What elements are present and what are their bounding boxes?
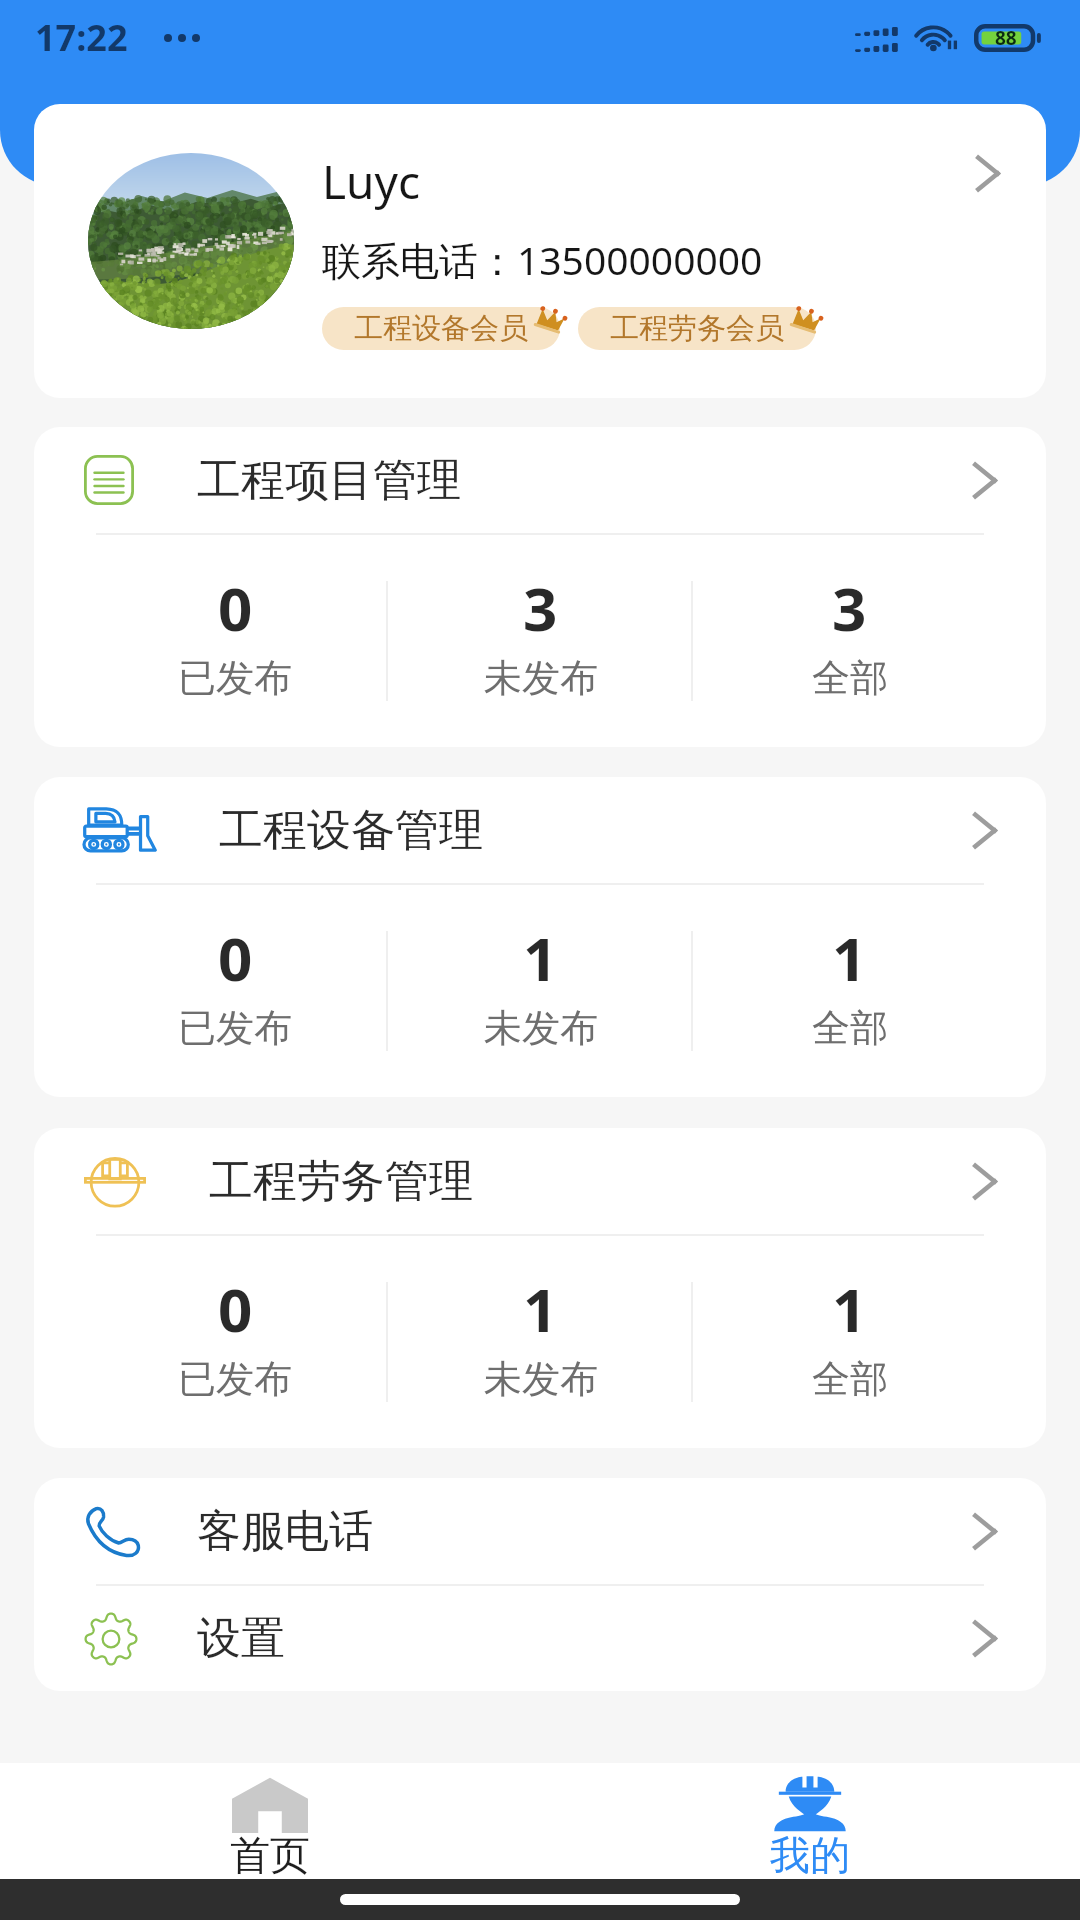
button[interactable]: 工程劳务管理 <box>34 1128 1046 1234</box>
staticText: 1 <box>523 1268 558 1350</box>
staticText: 全部 <box>812 1004 888 1052</box>
staticText: 未发布 <box>484 1355 598 1403</box>
staticText: 1 <box>523 917 558 999</box>
button[interactable]: 首页 <box>0 1763 540 1879</box>
button[interactable]: 查看个人资料 <box>960 145 1016 201</box>
staticText: 已发布 <box>178 1004 292 1052</box>
staticText: 88 <box>995 25 1017 51</box>
staticText: 工程劳务会员 <box>610 310 784 347</box>
staticText: 全部 <box>812 654 888 702</box>
button[interactable]: 3 <box>709 535 1046 747</box>
staticText: 设置 <box>197 1611 285 1666</box>
staticText: Luyc <box>322 150 421 213</box>
staticText: 1 <box>832 1268 867 1350</box>
button[interactable]: 工程设备会员 <box>322 307 560 350</box>
button[interactable]: 3 <box>372 535 709 747</box>
button[interactable]: 工程设备管理 <box>34 777 1046 883</box>
staticText: 全部 <box>812 1355 888 1403</box>
staticText: 0 <box>218 567 253 649</box>
staticText: 我的 <box>770 1830 850 1876</box>
staticText: 工程项目管理 <box>197 453 461 508</box>
button[interactable]: 1 <box>372 1236 709 1448</box>
staticText: 工程设备会员 <box>354 310 528 347</box>
staticText: 17:22 <box>35 13 128 62</box>
staticText: 未发布 <box>484 1004 598 1052</box>
staticText: 3 <box>832 567 867 649</box>
staticText: 工程劳务管理 <box>209 1154 473 1209</box>
button[interactable]: 0 <box>34 1236 372 1448</box>
button[interactable]: Luyc <box>34 104 1046 398</box>
staticText: 3 <box>523 567 558 649</box>
button[interactable]: 工程项目管理 <box>34 427 1046 533</box>
button[interactable]: 0 <box>34 885 372 1097</box>
button[interactable]: 我的 <box>540 1763 1080 1879</box>
staticText: 首页 <box>230 1830 310 1876</box>
button[interactable]: 1 <box>709 885 1046 1097</box>
button[interactable]: 1 <box>709 1236 1046 1448</box>
staticText: 已发布 <box>178 654 292 702</box>
staticText: 已发布 <box>178 1355 292 1403</box>
staticText: 0 <box>218 1268 253 1350</box>
button[interactable]: 工程劳务会员 <box>578 307 816 350</box>
staticText: 客服电话 <box>197 1504 373 1559</box>
button[interactable]: 0 <box>34 535 372 747</box>
staticText: 0 <box>218 917 253 999</box>
button[interactable]: 设置 <box>34 1586 1046 1691</box>
button[interactable]: 1 <box>372 885 709 1097</box>
staticText: 未发布 <box>484 654 598 702</box>
staticText: 1 <box>832 917 867 999</box>
staticText: 联系电话：13500000000 <box>322 233 763 286</box>
button[interactable]: 客服电话 <box>34 1478 1046 1584</box>
staticText: 工程设备管理 <box>219 803 483 858</box>
